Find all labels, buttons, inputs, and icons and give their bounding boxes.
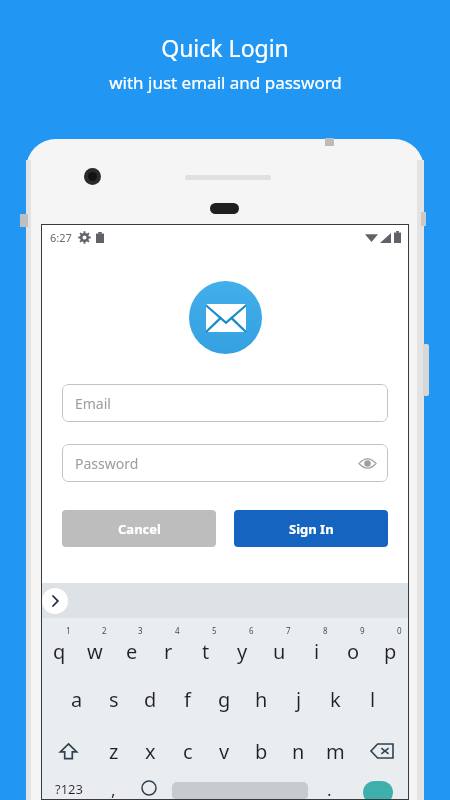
staticText: k [330, 686, 341, 713]
staticText: v [219, 738, 230, 765]
button[interactable]: a [58, 673, 95, 725]
button[interactable]: m [317, 725, 354, 777]
staticText: o [347, 638, 360, 665]
button[interactable]: x [132, 725, 169, 777]
staticText: b [255, 738, 268, 765]
staticText: w [87, 638, 103, 665]
button[interactable]: b [243, 725, 280, 777]
staticText: h [255, 686, 268, 713]
staticText: Password [75, 454, 139, 473]
staticText: s [109, 686, 119, 713]
staticText: x [145, 738, 156, 765]
staticText: y [237, 638, 248, 665]
staticText: 1 [66, 625, 71, 636]
button[interactable]: Enter [346, 777, 409, 800]
staticText: a [71, 686, 83, 713]
staticText: q [53, 638, 66, 665]
button[interactable]: Email [62, 384, 388, 422]
staticText: f [184, 686, 191, 713]
button[interactable]: z [95, 725, 132, 777]
button[interactable]: j [280, 673, 317, 725]
staticText: . [327, 778, 332, 800]
staticText: Sign In [289, 520, 334, 538]
button[interactable]: Cancel [62, 510, 216, 547]
staticText: p [384, 638, 397, 665]
staticText: n [292, 738, 305, 765]
staticText: 6:27 [50, 230, 72, 245]
staticText: d [144, 686, 157, 713]
staticText: m [326, 738, 345, 765]
button[interactable]: Sign In [234, 510, 388, 547]
staticText: g [218, 686, 231, 713]
button[interactable]: 1 [41, 618, 77, 673]
button[interactable]: 2 [77, 618, 113, 673]
button[interactable]: l [354, 673, 391, 725]
button[interactable]: More suggestions [42, 588, 68, 614]
staticText: t [202, 638, 210, 665]
staticText: r [164, 638, 173, 665]
button[interactable]: Shift [41, 725, 95, 777]
button[interactable]: f [169, 673, 206, 725]
button[interactable]: 0 [372, 618, 409, 673]
button[interactable]: Symbols [41, 777, 96, 800]
button[interactable]: k [317, 673, 354, 725]
staticText: j [296, 686, 302, 713]
button[interactable]: 4 [150, 618, 187, 673]
button[interactable]: 3 [113, 618, 150, 673]
button[interactable]: 9 [335, 618, 372, 673]
button[interactable]: v [206, 725, 243, 777]
staticText: 4 [175, 625, 180, 636]
staticText: 3 [138, 625, 143, 636]
button[interactable]: Show password [357, 453, 377, 473]
staticText: 6 [249, 625, 254, 636]
staticText: e [126, 638, 138, 665]
staticText: with just email and password [109, 71, 342, 94]
staticText: 0 [397, 625, 402, 636]
staticText: u [273, 638, 286, 665]
button[interactable]: h [243, 673, 280, 725]
staticText: 9 [360, 625, 365, 636]
staticText: ?123 [55, 780, 83, 798]
staticText: l [370, 686, 376, 713]
staticText: 5 [212, 625, 217, 636]
staticText: i [314, 638, 320, 665]
staticText: Email [75, 394, 111, 413]
staticText: c [183, 738, 193, 765]
staticText: 7 [286, 625, 291, 636]
staticText: , [111, 778, 116, 800]
staticText: 2 [102, 625, 107, 636]
button[interactable]: Backspace [354, 725, 409, 777]
button[interactable]: g [206, 673, 243, 725]
staticText: 8 [323, 625, 328, 636]
button[interactable]: d [132, 673, 169, 725]
staticText: z [109, 738, 119, 765]
staticText: Quick Login [161, 32, 289, 63]
button[interactable]: Space [172, 782, 308, 800]
button[interactable]: Emoji [130, 777, 168, 800]
button[interactable]: Email logo [189, 281, 262, 354]
button[interactable]: c [169, 725, 206, 777]
button[interactable]: . [312, 777, 346, 800]
button[interactable]: 6 [224, 618, 261, 673]
button[interactable]: n [280, 725, 317, 777]
button[interactable]: 7 [261, 618, 298, 673]
button[interactable]: , [96, 777, 130, 800]
button[interactable]: s [95, 673, 132, 725]
button[interactable]: 8 [298, 618, 335, 673]
button[interactable]: Password [62, 444, 388, 482]
button[interactable]: 5 [187, 618, 224, 673]
staticText: Cancel [118, 520, 161, 538]
